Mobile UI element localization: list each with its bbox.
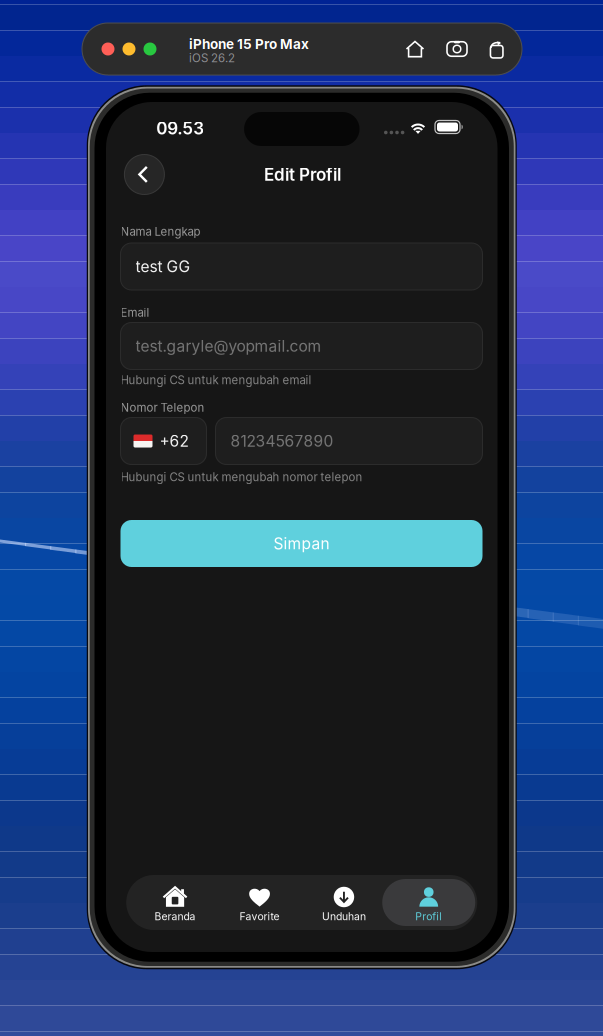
staticText: Unduhan — [322, 910, 366, 923]
staticText: Simpan — [273, 534, 329, 553]
staticText: Nama Lengkap — [120, 225, 200, 239]
staticText: 81234567890 — [230, 432, 333, 450]
staticText: +62 — [159, 432, 188, 450]
staticText: Beranda — [155, 910, 196, 923]
button[interactable]: Screenshot — [440, 32, 474, 66]
button[interactable]: Favorite — [220, 875, 300, 930]
button[interactable]: Simpan — [120, 520, 482, 567]
staticText: Profil — [415, 910, 442, 923]
staticText: test.garyle@yopmail.com — [135, 337, 321, 355]
staticText: iOS 26.2 — [189, 51, 235, 65]
button[interactable]: Share — [479, 32, 513, 66]
button[interactable]: Unduhan — [304, 875, 384, 930]
staticText: Edit Profil — [264, 164, 341, 185]
staticText: iPhone 15 Pro Max — [189, 36, 309, 52]
staticText: Hubungi CS untuk mengubah nomor telepon — [120, 470, 362, 484]
button[interactable]: +62 — [120, 417, 206, 464]
button[interactable]: Back — [122, 152, 166, 196]
staticText: test GG — [135, 257, 190, 276]
staticText: Nomor Telepon — [120, 401, 204, 414]
staticText: 09.53 — [156, 118, 204, 139]
button[interactable]: Home — [398, 32, 432, 66]
staticText: Hubungi CS untuk mengubah email — [120, 373, 311, 387]
staticText: Email — [120, 306, 149, 319]
button[interactable]: Beranda — [135, 875, 215, 930]
button[interactable]: test GG — [120, 243, 482, 290]
staticText: Favorite — [240, 910, 280, 923]
button[interactable]: Profil — [382, 875, 475, 930]
